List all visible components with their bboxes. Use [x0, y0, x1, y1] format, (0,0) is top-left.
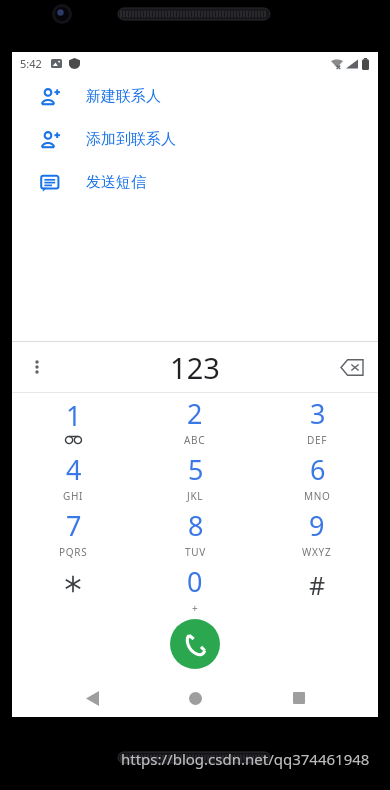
staticText: 1 — [66, 397, 82, 434]
staticText: TUV — [185, 545, 206, 559]
staticText: 2 — [187, 395, 203, 432]
staticText: DEF — [307, 433, 328, 447]
button[interactable]: 发送短信 — [12, 161, 378, 204]
button[interactable]: 8 — [134, 505, 256, 561]
button[interactable]: # — [256, 561, 378, 617]
staticText: 4 — [66, 451, 82, 488]
staticText: https://blog.csdn.net/qq374461948 — [121, 749, 370, 769]
staticText: 6 — [310, 451, 326, 488]
button[interactable]: 9 — [256, 505, 378, 561]
button[interactable]: More options — [12, 342, 62, 392]
staticText: 发送短信 — [86, 173, 146, 192]
button[interactable]: 1 — [12, 393, 134, 449]
staticText: # — [309, 568, 326, 602]
staticText: ABC — [184, 433, 206, 447]
staticText: 8 — [188, 507, 204, 544]
staticText: 3 — [310, 395, 326, 432]
button[interactable]: 3 — [256, 393, 378, 449]
button[interactable]: Back — [68, 679, 116, 717]
button[interactable]: 7 — [12, 505, 134, 561]
staticText: JKL — [187, 489, 204, 503]
button[interactable]: 2 — [134, 393, 256, 449]
button[interactable]: Recents — [275, 679, 323, 717]
button[interactable]: 添加到联系人 — [12, 118, 378, 161]
staticText: + — [192, 601, 199, 615]
button[interactable]: Call — [170, 619, 220, 669]
staticText: MNO — [304, 489, 331, 503]
staticText: 9 — [309, 507, 325, 544]
staticText: 5 — [188, 451, 204, 488]
button[interactable]: 0 — [134, 561, 256, 617]
button[interactable]: 5 — [134, 449, 256, 505]
button[interactable]: 新建联系人 — [12, 75, 378, 118]
button[interactable]: 6 — [256, 449, 378, 505]
staticText: WXYZ — [302, 545, 332, 559]
staticText: PQRS — [59, 545, 88, 559]
staticText: 新建联系人 — [86, 87, 161, 106]
staticText: GHI — [63, 489, 84, 503]
button[interactable]: Backspace — [326, 342, 378, 392]
button[interactable]: 4 — [12, 449, 134, 505]
button[interactable]: Home — [171, 679, 219, 717]
staticText: 123 — [170, 348, 220, 387]
staticText: 0 — [187, 563, 203, 600]
staticText: 添加到联系人 — [86, 130, 176, 149]
staticText: 7 — [66, 507, 82, 544]
button[interactable] — [12, 561, 134, 617]
staticText: 5:42 — [20, 56, 42, 71]
